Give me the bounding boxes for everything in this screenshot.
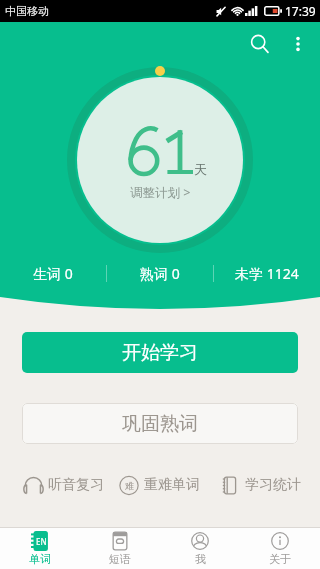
button[interactable]: 熟词 0 [107,262,213,284]
staticText: 短语 [109,552,131,566]
staticText: 关于 [269,552,291,566]
button[interactable]: 难 [119,474,200,496]
staticText: 中国移动 [5,4,49,18]
staticText: 天 [194,161,207,177]
button[interactable]: 听音复习 [23,474,104,496]
staticText: 巩固熟词 [122,412,198,436]
staticText: 未学 1124 [235,264,299,283]
staticText: 17:39 [285,3,316,19]
button[interactable]: 调整计划 > [130,184,191,201]
button[interactable]: 生词 0 [0,262,106,284]
staticText: 听音复习 [48,476,104,494]
button[interactable]: 我 [160,528,240,569]
button[interactable]: EN [0,528,80,569]
staticText: 开始学习 [122,341,198,365]
staticText: 调整计划 > [130,184,191,201]
button[interactable]: 短语 [80,528,160,569]
staticText: 我 [195,552,206,566]
staticText: 重难单词 [144,476,200,494]
button[interactable]: 巩固熟词 [22,403,298,444]
staticText: 熟词 0 [140,264,180,283]
button[interactable]: 未学 1124 [214,262,320,284]
staticText: 难 [125,480,134,491]
button[interactable]: 开始学习 [22,332,298,373]
staticText: 单词 [29,552,51,566]
button[interactable]: 关于 [240,528,320,569]
button[interactable]: 学习统计 [220,474,301,496]
staticText: 生词 0 [33,264,73,283]
staticText: EN [36,536,47,547]
button[interactable]: More options [280,26,316,62]
button[interactable]: Search [240,24,280,64]
staticText: 学习统计 [245,476,301,494]
